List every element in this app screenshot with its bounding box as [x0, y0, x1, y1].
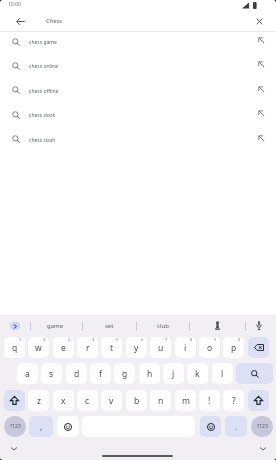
- button[interactable]: u: [150, 337, 171, 358]
- button[interactable]: ,: [29, 416, 53, 437]
- staticText: 7: [165, 337, 168, 342]
- button[interactable]: f: [90, 363, 111, 384]
- staticText: v: [109, 395, 114, 407]
- button[interactable]: v: [101, 390, 122, 411]
- button[interactable]: t: [101, 337, 122, 358]
- button[interactable]: e: [53, 337, 74, 358]
- button[interactable]: l: [212, 363, 233, 384]
- button[interactable]: o: [199, 337, 220, 358]
- button[interactable]: [248, 337, 269, 358]
- staticText: j: [172, 368, 175, 380]
- staticText: !: [208, 395, 211, 407]
- staticText: chess game: [29, 39, 57, 46]
- staticText: o: [207, 342, 213, 354]
- staticText: .: [235, 421, 238, 432]
- staticText: 6: [141, 337, 144, 342]
- button[interactable]: [189, 315, 245, 336]
- button[interactable]: set: [82, 315, 136, 336]
- staticText: l: [221, 368, 224, 380]
- button[interactable]: [0, 130, 276, 154]
- staticText: g: [122, 368, 128, 380]
- staticText: z: [37, 395, 41, 407]
- button[interactable]: [200, 416, 221, 437]
- staticText: 2: [43, 337, 46, 342]
- staticText: h: [147, 368, 153, 380]
- staticText: p: [231, 342, 237, 354]
- staticText: a: [25, 368, 30, 380]
- staticText: q: [12, 342, 18, 354]
- staticText: chess online: [29, 63, 59, 70]
- staticText: ?123: [257, 423, 268, 430]
- button[interactable]: n: [150, 390, 171, 411]
- staticText: n: [158, 395, 164, 407]
- button[interactable]: k: [187, 363, 208, 384]
- button[interactable]: b: [126, 390, 147, 411]
- button[interactable]: [4, 390, 25, 411]
- button[interactable]: [57, 416, 79, 437]
- staticText: 0: [238, 337, 241, 342]
- button[interactable]: z: [28, 390, 49, 411]
- button[interactable]: [236, 363, 273, 384]
- staticText: 4: [92, 337, 95, 342]
- button[interactable]: i: [175, 337, 196, 358]
- button[interactable]: j: [163, 363, 184, 384]
- button[interactable]: [16, 17, 25, 26]
- staticText: ?: [232, 395, 236, 407]
- staticText: 10:00: [8, 1, 21, 8]
- button[interactable]: m: [175, 390, 196, 411]
- button[interactable]: r: [77, 337, 98, 358]
- staticText: Chess: [46, 17, 63, 25]
- button[interactable]: y: [126, 337, 147, 358]
- button[interactable]: !: [199, 390, 220, 411]
- button[interactable]: g: [114, 363, 135, 384]
- staticText: game: [47, 322, 64, 330]
- staticText: f: [99, 368, 102, 380]
- staticText: ?123: [10, 423, 21, 430]
- staticText: k: [195, 368, 200, 380]
- staticText: chess clock: [29, 112, 56, 119]
- staticText: c: [85, 395, 90, 407]
- button[interactable]: ?123: [251, 416, 273, 437]
- staticText: 8: [190, 337, 193, 342]
- button[interactable]: [245, 315, 276, 336]
- button[interactable]: club: [136, 315, 189, 336]
- button[interactable]: [0, 32, 276, 56]
- staticText: w: [35, 342, 42, 354]
- staticText: set: [105, 322, 114, 330]
- button[interactable]: q: [4, 337, 25, 358]
- button[interactable]: ?123: [4, 416, 26, 437]
- button[interactable]: [0, 56, 276, 80]
- staticText: 1: [19, 337, 22, 342]
- button[interactable]: [10, 322, 20, 330]
- staticText: b: [134, 395, 140, 407]
- staticText: m: [182, 395, 190, 407]
- staticText: 5: [116, 337, 119, 342]
- button[interactable]: c: [77, 390, 98, 411]
- staticText: e: [61, 342, 66, 354]
- button[interactable]: [0, 81, 276, 105]
- staticText: i: [184, 342, 187, 354]
- button[interactable]: a: [17, 363, 38, 384]
- staticText: d: [74, 368, 80, 380]
- staticText: chess clash: [29, 137, 56, 144]
- button[interactable]: [248, 390, 269, 411]
- button[interactable]: s: [41, 363, 62, 384]
- button[interactable]: [0, 105, 276, 129]
- staticText: chess offline: [29, 88, 59, 95]
- button[interactable]: game: [30, 315, 81, 336]
- staticText: ,: [40, 421, 43, 432]
- staticText: x: [61, 395, 66, 407]
- button[interactable]: [256, 18, 263, 25]
- staticText: club: [157, 322, 169, 330]
- button[interactable]: d: [66, 363, 87, 384]
- button[interactable]: [0, 10, 276, 31]
- button[interactable]: x: [53, 390, 74, 411]
- button[interactable]: .: [225, 416, 247, 437]
- button[interactable]: h: [139, 363, 160, 384]
- staticText: t: [110, 342, 114, 354]
- button[interactable]: w: [28, 337, 49, 358]
- button[interactable]: p: [223, 337, 244, 358]
- button[interactable]: ?: [223, 390, 244, 411]
- staticText: u: [158, 342, 164, 354]
